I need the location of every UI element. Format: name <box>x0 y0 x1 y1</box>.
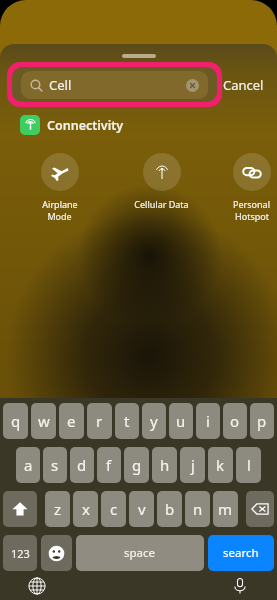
button[interactable]: Personal <box>226 153 277 222</box>
button[interactable]: Clear text <box>186 79 199 92</box>
button[interactable]: z <box>45 491 70 527</box>
staticText: Cell <box>49 76 72 94</box>
staticText: q <box>11 411 21 431</box>
button[interactable]: i <box>196 403 220 439</box>
staticText: Cellular Data <box>134 198 189 210</box>
button[interactable]: o <box>223 403 247 439</box>
button[interactable]: x <box>73 491 98 527</box>
staticText: k <box>216 455 225 475</box>
button[interactable]: t <box>115 403 139 439</box>
staticText: y <box>150 411 158 431</box>
staticText: h <box>160 455 170 475</box>
button[interactable]: Connectivity <box>20 115 277 135</box>
staticText: Cell <box>49 76 72 94</box>
button[interactable]: s <box>43 447 67 483</box>
staticText: 123 <box>11 546 30 561</box>
staticText: n <box>193 499 203 519</box>
staticText: search <box>223 545 259 561</box>
button[interactable]: l <box>236 447 261 483</box>
staticText: e <box>67 411 76 431</box>
button[interactable]: Emoji <box>41 535 72 571</box>
staticText: Cancel <box>223 76 264 94</box>
staticText: s <box>51 455 59 475</box>
button[interactable]: f <box>97 447 121 483</box>
button[interactable]: Cancel <box>218 70 269 100</box>
button[interactable]: m <box>213 491 238 527</box>
staticText: f <box>106 455 112 475</box>
staticText: Airplane <box>42 198 78 210</box>
button[interactable]: g <box>124 447 149 483</box>
button[interactable]: space <box>76 535 204 571</box>
staticText: Mode <box>47 210 72 222</box>
button[interactable]: j <box>180 447 205 483</box>
staticText: Personal <box>233 198 270 210</box>
staticText: c <box>110 499 118 519</box>
staticText: x <box>82 499 90 519</box>
staticText: g <box>132 455 142 475</box>
button[interactable]: y <box>142 403 166 439</box>
button[interactable]: Dictation <box>225 571 255 600</box>
staticText: l <box>247 455 251 475</box>
staticText: a <box>24 455 33 475</box>
staticText: r <box>96 411 103 431</box>
button[interactable]: Shift <box>3 491 37 527</box>
staticText: b <box>165 499 175 519</box>
button[interactable]: n <box>185 491 210 527</box>
staticText: u <box>176 411 186 431</box>
staticText: z <box>54 499 62 519</box>
staticText: j <box>191 455 195 475</box>
button[interactable]: v <box>129 491 154 527</box>
staticText: w <box>38 411 50 431</box>
button[interactable]: r <box>87 403 112 439</box>
staticText: Connectivity <box>47 117 124 134</box>
button[interactable]: w <box>31 403 56 439</box>
button[interactable]: Cell <box>21 71 208 99</box>
button[interactable]: Clear text <box>196 79 209 92</box>
button[interactable]: h <box>152 447 177 483</box>
button[interactable]: q <box>3 403 28 439</box>
button[interactable]: search <box>208 535 274 571</box>
staticText: d <box>77 455 87 475</box>
button[interactable]: Cell <box>21 70 218 100</box>
button[interactable]: u <box>169 403 193 439</box>
button[interactable]: k <box>208 447 233 483</box>
button[interactable]: Change keyboard <box>22 571 52 600</box>
button[interactable]: Cellular Data <box>124 153 199 210</box>
button[interactable]: b <box>157 491 182 527</box>
button[interactable]: Airplane <box>22 153 97 222</box>
staticText: space <box>124 545 156 561</box>
staticText: t <box>124 411 130 431</box>
button[interactable]: Backspace <box>246 491 274 527</box>
button[interactable]: e <box>59 403 84 439</box>
button[interactable]: c <box>101 491 126 527</box>
button[interactable]: 123 <box>3 535 37 571</box>
staticText: v <box>138 499 146 519</box>
button[interactable]: p <box>250 403 274 439</box>
staticText: p <box>257 411 267 431</box>
staticText: i <box>206 411 210 431</box>
staticText: m <box>218 499 233 519</box>
staticText: o <box>230 411 240 431</box>
button[interactable]: a <box>16 447 40 483</box>
button[interactable]: d <box>70 447 94 483</box>
staticText: Hotspot <box>235 210 269 222</box>
